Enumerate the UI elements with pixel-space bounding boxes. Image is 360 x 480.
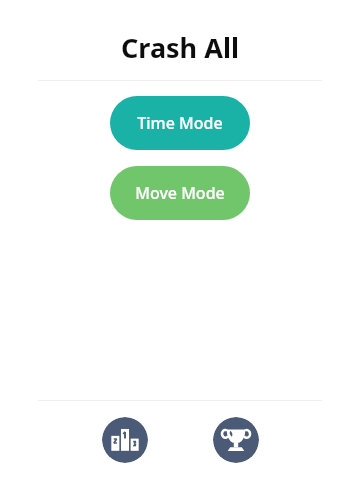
- button[interactable]: Move Mode: [110, 166, 250, 220]
- button[interactable]: Achievements: [213, 417, 259, 463]
- staticText: Time Mode: [137, 112, 223, 134]
- staticText: Crash All: [0, 29, 360, 66]
- staticText: Move Mode: [135, 182, 225, 204]
- button[interactable]: Time Mode: [110, 96, 250, 150]
- button[interactable]: Leaderboard: [102, 417, 148, 463]
